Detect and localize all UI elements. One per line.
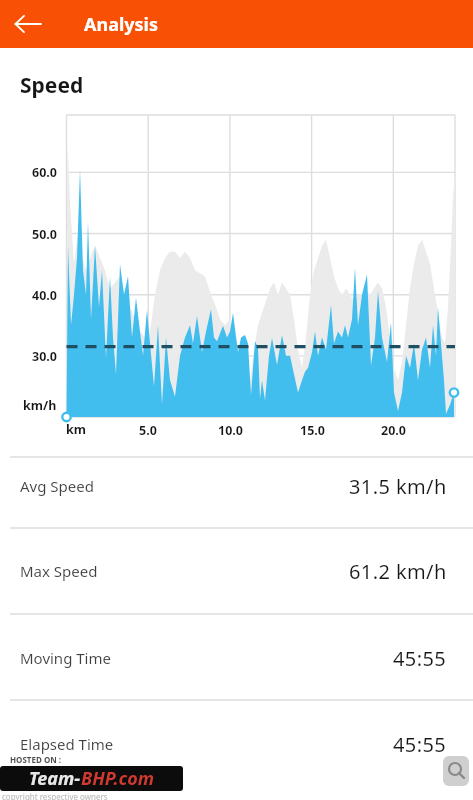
staticText: 30.0	[32, 348, 57, 365]
staticText: 10.0	[218, 422, 243, 439]
staticText: Elapsed Time	[20, 734, 114, 754]
staticText: km/h	[23, 397, 57, 414]
staticText: 50.0	[32, 226, 57, 243]
staticText: 5.0	[139, 422, 157, 439]
staticText: Max Speed	[20, 561, 98, 581]
staticText: BHP.com	[81, 766, 155, 791]
staticText: Speed	[20, 71, 84, 100]
staticText: 15.0	[300, 422, 325, 439]
staticText: 45:55	[393, 731, 447, 758]
staticText: 60.0	[32, 164, 57, 181]
staticText: 40.0	[32, 287, 57, 304]
staticText: 45:55	[393, 645, 447, 672]
staticText: Moving Time	[20, 648, 111, 668]
staticText: km	[66, 421, 86, 438]
staticText: Analysis	[84, 12, 159, 37]
button[interactable]	[0, 0, 56, 48]
staticText: Team-	[29, 766, 81, 791]
staticText: 61.2 km/h	[349, 558, 447, 585]
button[interactable]: Max Speed	[0, 536, 473, 606]
staticText: copyright respective owners	[2, 791, 108, 800]
staticText: 31.5 km/h	[349, 473, 447, 500]
button[interactable]: Moving Time	[0, 623, 473, 693]
staticText: Avg Speed	[20, 476, 94, 496]
button[interactable]: Elapsed Time	[0, 709, 473, 779]
staticText: HOSTED ON :	[10, 754, 62, 765]
staticText: 20.0	[381, 422, 406, 439]
button[interactable]: Avg Speed	[0, 451, 473, 521]
